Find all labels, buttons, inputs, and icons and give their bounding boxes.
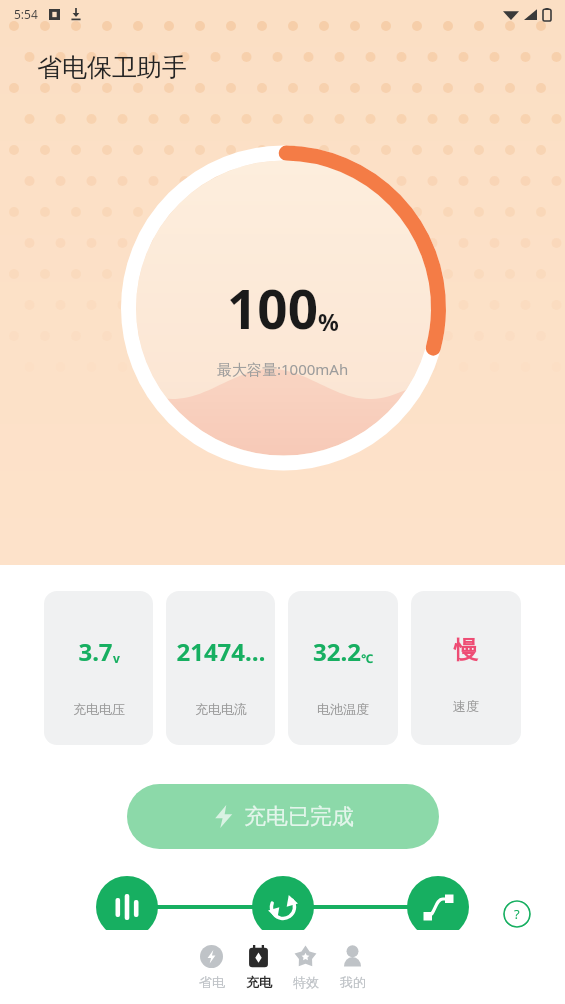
staticText: ?: [514, 905, 520, 923]
staticText: 省电: [199, 974, 225, 990]
staticText: 充电电压: [73, 701, 125, 717]
staticText: %: [318, 306, 339, 337]
staticText: 最大容量:1000mAh: [217, 359, 349, 379]
staticText: 32.2: [313, 635, 361, 668]
button[interactable]: 特效: [282, 930, 329, 1004]
staticText: 充电已完成: [244, 803, 354, 831]
staticText: 我的: [340, 974, 366, 990]
staticText: 省电保卫助手: [37, 52, 187, 83]
staticText: 100: [227, 272, 318, 344]
staticText: 5:54: [14, 6, 38, 22]
button[interactable]: 32.2: [288, 591, 398, 745]
staticText: 速度: [453, 698, 479, 714]
staticText: 特效: [293, 974, 319, 990]
button[interactable]: Help: [503, 900, 531, 928]
button[interactable]: 充电已完成: [127, 784, 439, 849]
staticText: v: [113, 650, 120, 666]
staticText: ℃: [361, 650, 374, 666]
staticText: 充电: [246, 974, 272, 990]
button[interactable]: 21474…: [166, 591, 275, 745]
button[interactable]: 慢: [411, 591, 521, 745]
staticText: 3.7: [78, 635, 113, 668]
button[interactable]: 省电: [188, 930, 235, 1004]
button[interactable]: 3.7: [44, 591, 153, 745]
staticText: 电池温度: [317, 701, 369, 717]
staticText: 充电电流: [195, 701, 247, 717]
button[interactable]: 我的: [329, 930, 376, 1004]
staticText: 21474…: [176, 635, 266, 668]
staticText: 慢: [454, 635, 478, 665]
button[interactable]: 充电: [235, 930, 282, 1004]
